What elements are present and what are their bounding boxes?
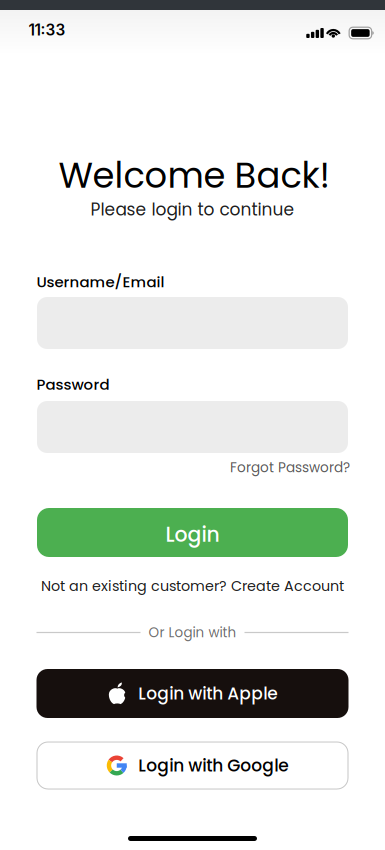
staticText: Or Login with (148, 623, 236, 642)
staticText: Forgot Password? (230, 458, 350, 477)
button[interactable]: Login with Google (37, 742, 348, 789)
button[interactable]: Forgot Password? (230, 458, 350, 477)
staticText: 11:33 (28, 21, 65, 39)
staticText: Login with Google (138, 754, 288, 777)
staticText: Please login to continue (90, 198, 294, 221)
button[interactable]: Login (37, 508, 348, 557)
staticText: Login with Apple (138, 682, 277, 705)
staticText: Username/Email (36, 271, 164, 292)
button[interactable]: Not an existing customer? Create Account (41, 576, 344, 596)
staticText: Password (36, 374, 109, 395)
staticText: Login (165, 520, 219, 549)
button[interactable]: Login with Apple (36, 669, 348, 718)
staticText: Not an existing customer? Create Account (41, 576, 344, 596)
staticText: Welcome Back! (58, 151, 330, 200)
